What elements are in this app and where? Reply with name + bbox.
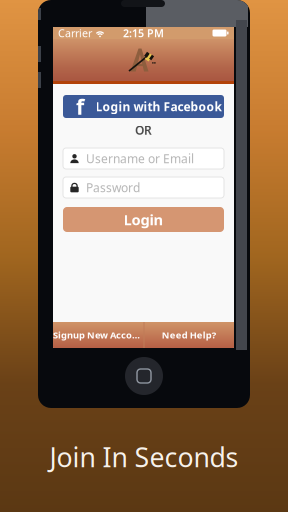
staticText: Need Help? xyxy=(162,329,216,341)
button[interactable]: Password xyxy=(63,177,224,198)
button[interactable]: Need Help? xyxy=(143,322,234,348)
button[interactable]: f xyxy=(63,95,224,118)
staticText: 2:15 PM xyxy=(123,26,164,40)
button[interactable]: Signup New Accou… xyxy=(53,322,143,348)
staticText: Signup New Accou… xyxy=(53,329,143,341)
staticText: Carrier xyxy=(58,26,92,40)
staticText: Username or Email xyxy=(86,150,194,166)
staticText: Login with Facebook xyxy=(95,98,221,114)
staticText: Password xyxy=(86,179,140,195)
button[interactable]: Username or Email xyxy=(63,148,224,169)
staticText: Login xyxy=(123,210,163,229)
staticText: OR xyxy=(135,122,152,138)
staticText: Join In Seconds xyxy=(49,439,238,475)
button[interactable]: Login xyxy=(63,207,224,232)
staticText: f xyxy=(76,92,84,121)
